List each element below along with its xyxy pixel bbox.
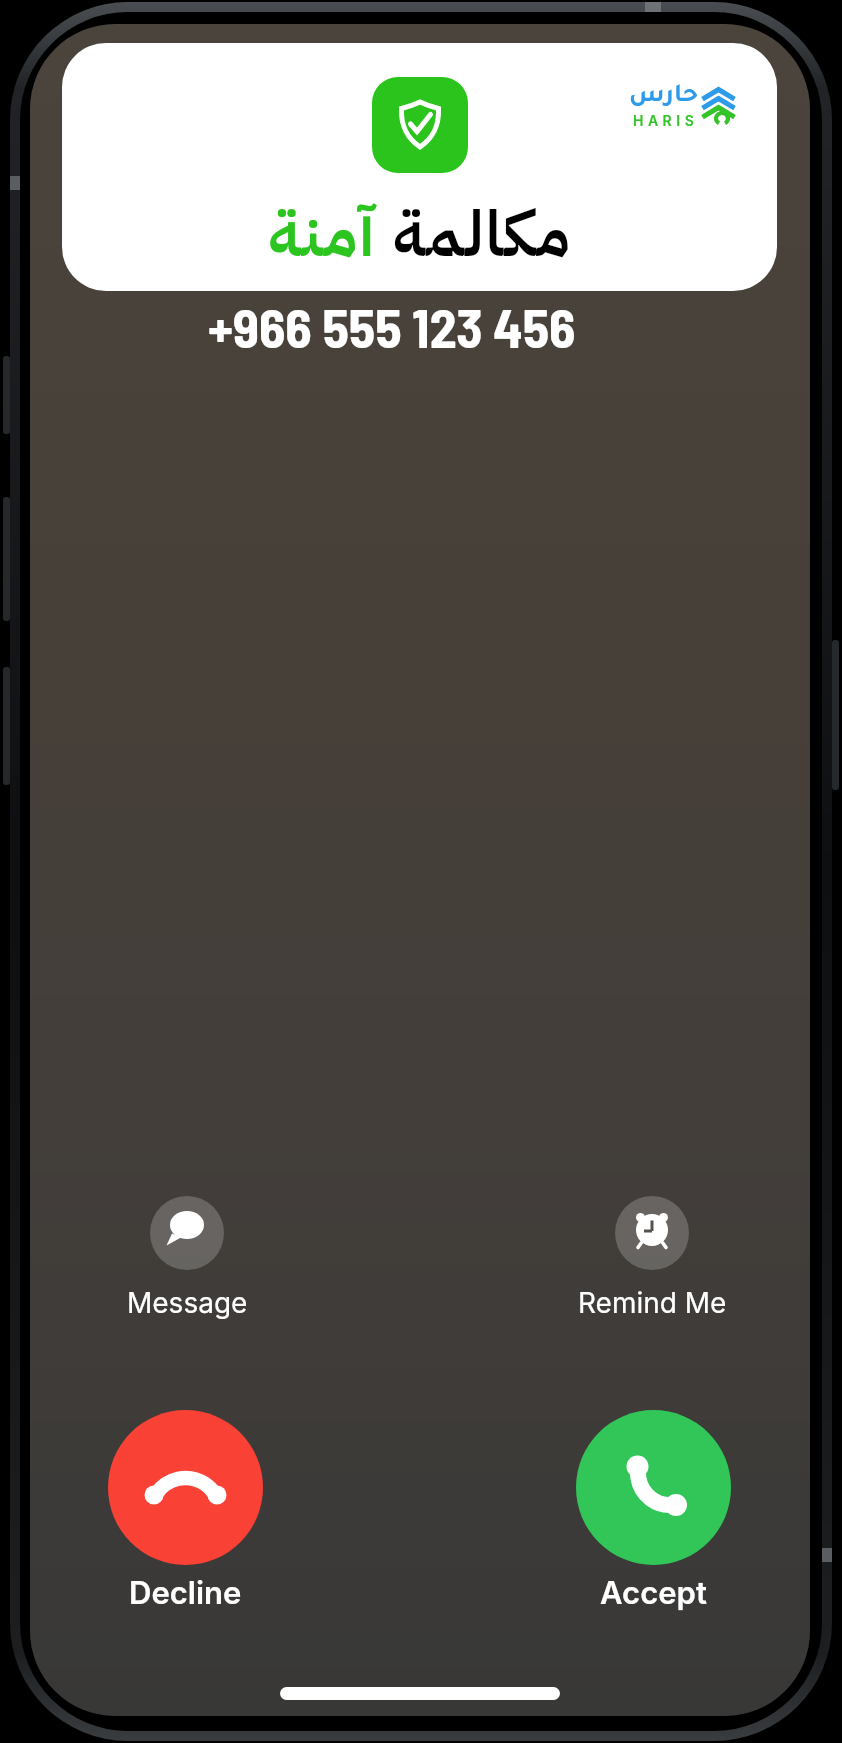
button[interactable]: Accept [553, 1410, 753, 1620]
staticText: HARIS [633, 112, 699, 129]
staticText: Decline [129, 1574, 242, 1612]
staticText: Message [127, 1286, 248, 1320]
staticText: مكالمة آمنة [268, 187, 572, 283]
button[interactable]: Message [107, 1190, 267, 1322]
button[interactable]: Decline [85, 1410, 285, 1620]
staticText: Accept [600, 1574, 707, 1612]
staticText: +966 555 123 456 [208, 294, 576, 359]
button[interactable]: Remind Me [572, 1190, 732, 1322]
staticText: حارس [629, 84, 699, 110]
staticText: Remind Me [578, 1286, 727, 1320]
